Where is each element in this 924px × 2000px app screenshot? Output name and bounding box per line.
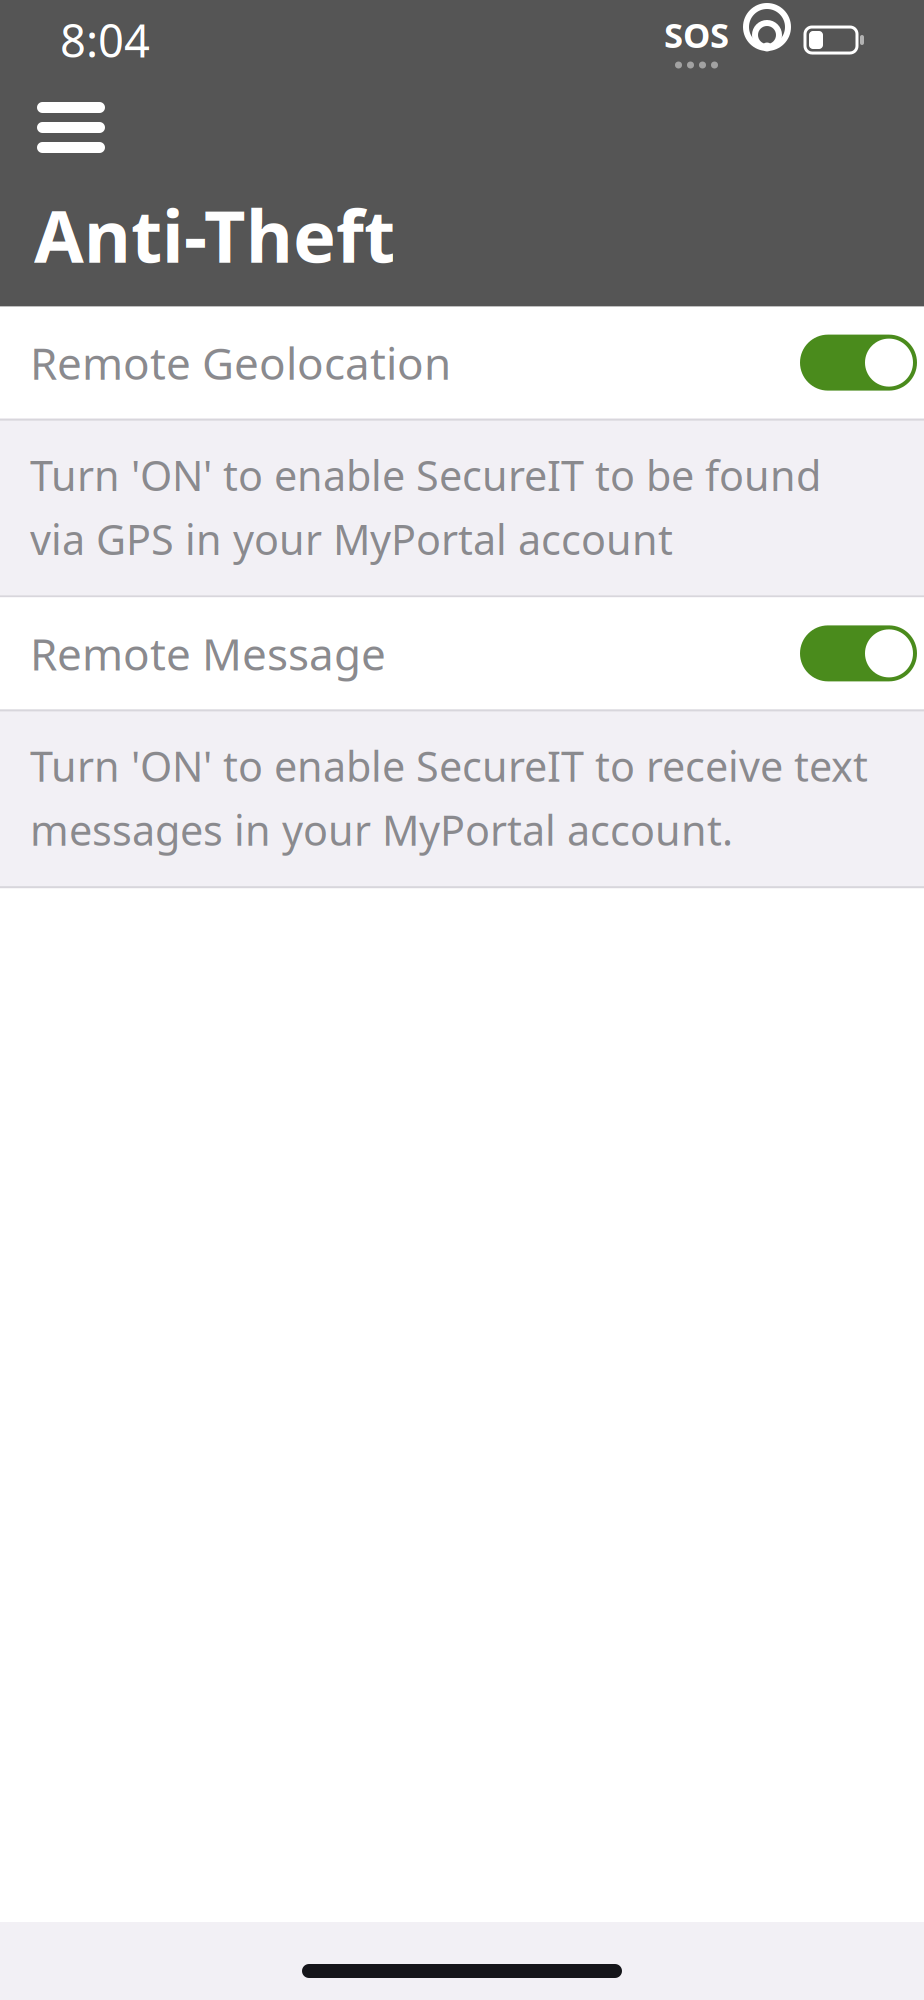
- button[interactable]: Remote Geolocation: [0, 307, 924, 419]
- staticText: Turn 'ON' to enable SecureIT to receive …: [30, 738, 868, 857]
- button[interactable]: Menu: [0, 80, 142, 175]
- staticText: SOS: [664, 11, 729, 57]
- button[interactable]: Remote Message: [0, 597, 924, 709]
- staticText: Anti-Theft: [34, 187, 395, 283]
- staticText: 8:04: [60, 10, 150, 70]
- staticText: Remote Geolocation: [30, 333, 451, 392]
- staticText: Remote Message: [30, 624, 386, 683]
- staticText: Turn 'ON' to enable SecureIT to be found…: [30, 448, 821, 566]
